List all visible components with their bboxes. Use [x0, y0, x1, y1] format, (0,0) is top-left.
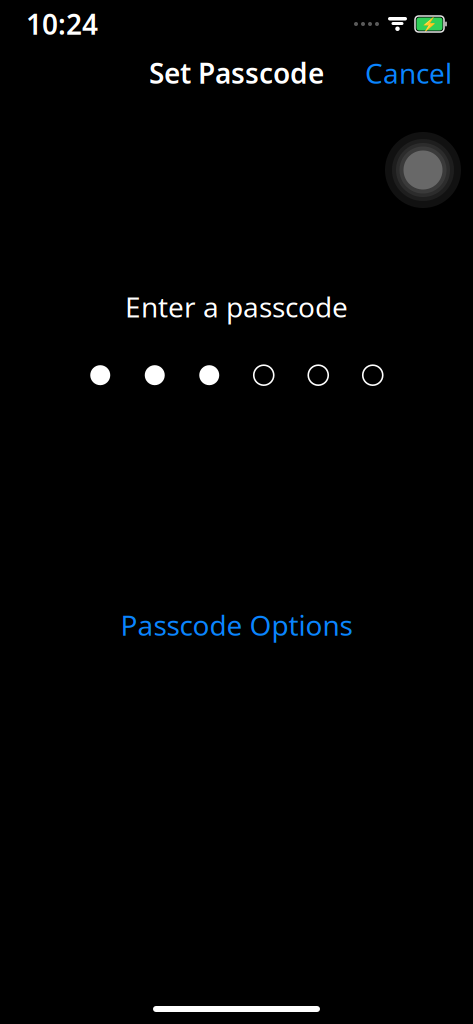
staticText: Enter a passcode: [125, 288, 348, 325]
staticText: 10:24: [26, 5, 98, 43]
staticText: ⚡: [421, 16, 438, 32]
button[interactable]: Cancel: [357, 48, 460, 98]
button[interactable]: Passcode Options: [106, 597, 366, 652]
staticText: Passcode Options: [120, 606, 352, 643]
staticText: Set Passcode: [149, 54, 324, 92]
staticText: Cancel: [365, 54, 452, 92]
